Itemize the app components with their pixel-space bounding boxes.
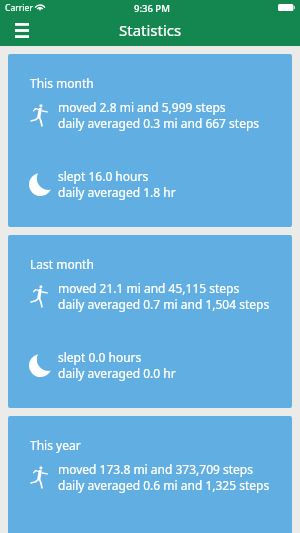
staticText: 9:36 PM <box>134 2 170 15</box>
staticText: moved 21.1 mi and 45,115 steps <box>58 280 240 296</box>
staticText: moved 173.8 mi and 373,709 steps <box>58 461 253 477</box>
button[interactable]: This year <box>8 416 292 533</box>
staticText: daily averaged 0.7 mi and 1,504 steps <box>58 296 270 312</box>
staticText: This month <box>30 75 94 91</box>
button[interactable]: This month <box>8 54 292 227</box>
staticText: moved 2.8 mi and 5,999 steps <box>58 99 226 115</box>
staticText: daily averaged 0.0 hr <box>58 365 176 381</box>
staticText: Last month <box>30 256 94 272</box>
staticText: This year <box>30 437 81 453</box>
staticText: slept 16.0 hours <box>58 168 149 184</box>
button[interactable]: Open navigation menu <box>3 20 41 46</box>
staticText: daily averaged 1.8 hr <box>58 184 176 200</box>
staticText: daily averaged 0.6 mi and 1,325 steps <box>58 477 270 493</box>
button[interactable]: Last month <box>8 235 292 408</box>
staticText: slept 0.0 hours <box>58 349 142 365</box>
staticText: Carrier <box>5 2 33 14</box>
staticText: daily averaged 0.3 mi and 667 steps <box>58 115 260 131</box>
staticText: Statistics <box>119 20 182 40</box>
